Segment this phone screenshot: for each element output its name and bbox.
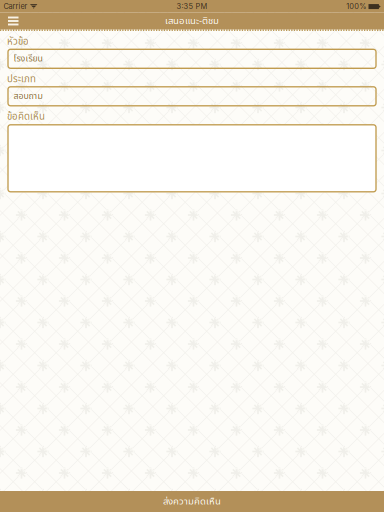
button[interactable]: ส่งความคิดเห็น [0, 491, 384, 512]
button[interactable]: Menu [0, 14, 29, 28]
staticText: Carrier [3, 2, 27, 11]
staticText: 100% [346, 2, 366, 11]
staticText: เสนอแนะ-ติชม [165, 14, 219, 28]
staticText: ส่งความคิดเห็น [163, 494, 221, 509]
staticText: หัวข้อ [7, 34, 29, 49]
staticText: ข้อคิดเห็น [7, 109, 45, 124]
staticText: 3:35 PM [176, 2, 207, 11]
staticText: สอบถาม [13, 90, 42, 103]
staticText: โรงเรียน [13, 52, 42, 65]
staticText: ประเภท [7, 72, 36, 87]
